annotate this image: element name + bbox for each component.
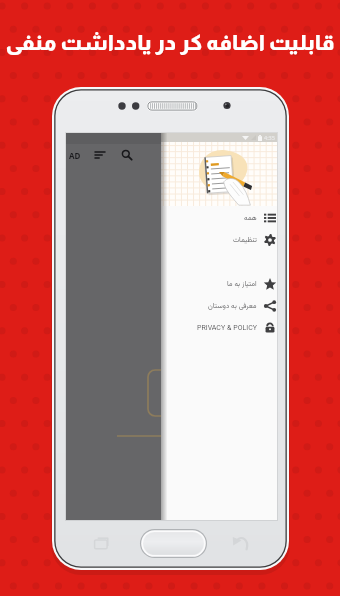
button[interactable]: تنظیمات: [66, 229, 277, 251]
button[interactable]: معرفی به دوستان: [66, 295, 277, 317]
staticText: تنظیمات: [233, 235, 257, 246]
staticText: امتیاز به ما: [227, 279, 257, 290]
staticText: PRIVACY & POLICY: [197, 323, 257, 334]
button[interactable]: AD: [67, 145, 83, 165]
button[interactable]: امتیاز به ما: [66, 273, 277, 295]
button[interactable]: همه: [66, 207, 277, 229]
button[interactable]: Search: [120, 145, 134, 165]
staticText: معرفی به دوستان: [208, 301, 257, 312]
button[interactable]: Sort: [93, 145, 107, 165]
staticText: قابلیت اضافه کر در یادداشت منفی: [5, 31, 335, 55]
staticText: AD: [69, 150, 81, 161]
button[interactable]: PRIVACY & POLICY: [66, 317, 277, 339]
staticText: 4:35: [264, 134, 275, 141]
staticText: همه: [244, 213, 257, 224]
